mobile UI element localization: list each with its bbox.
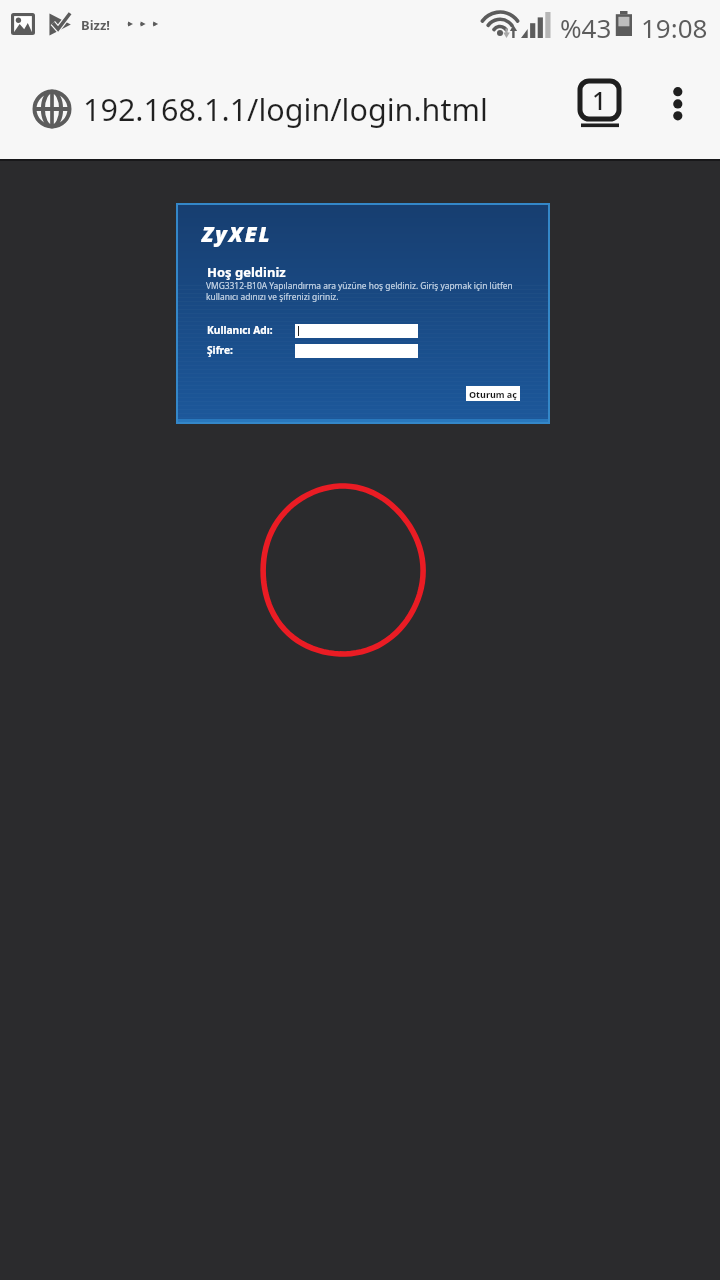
button[interactable]: 192.168.1.1/login/login.html [83,88,513,130]
staticText: Şifre: [207,343,233,357]
button[interactable]: Tabs [571,78,625,132]
button[interactable]: Oturum aç [469,386,517,401]
button[interactable]: Site information [30,87,74,131]
staticText: 19:08 [641,10,708,45]
staticText: Hoş geldiniz [207,263,286,281]
button[interactable]: More options [650,72,706,128]
staticText: 1 [592,83,607,117]
button[interactable]: Bizz notification [48,12,72,37]
button[interactable] [295,324,418,338]
staticText: ZyXEL [202,220,272,249]
button[interactable]: Bizz! [81,16,111,34]
button[interactable]: Screenshot captured [11,13,35,35]
staticText: %43 [560,10,612,45]
staticText: Kullanıcı Adı: [207,323,273,337]
staticText: Oturum aç [469,388,517,400]
staticText: VMG3312-B10A Yapılandırma ara yüzüne hoş… [206,280,528,302]
